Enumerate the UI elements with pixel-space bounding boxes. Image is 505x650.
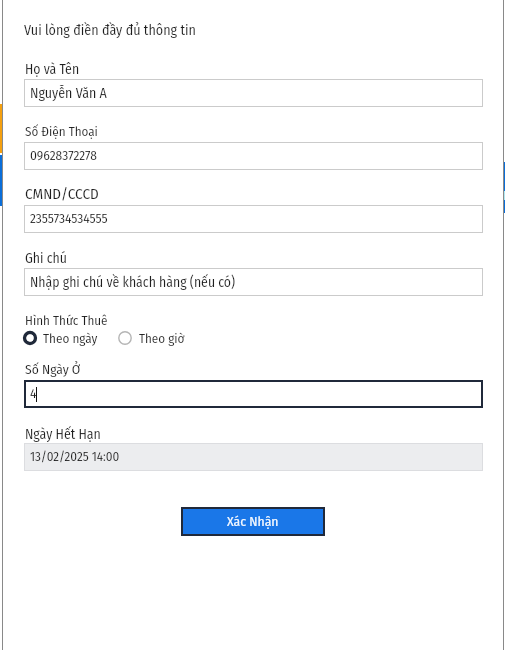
staticText: Ghi chú	[25, 250, 67, 266]
staticText: CMND/CCCD	[25, 185, 99, 203]
button[interactable]	[24, 79, 483, 107]
button[interactable]	[24, 268, 483, 296]
button[interactable]	[23, 330, 101, 346]
staticText: Hình Thức Thuê	[25, 313, 108, 329]
staticText: Nguyễn Văn A	[30, 85, 107, 102]
staticText: Số Điện Thoại	[25, 124, 98, 140]
staticText: Xác Nhận	[227, 513, 279, 529]
button[interactable]	[24, 443, 483, 471]
staticText: Theo ngày	[43, 331, 98, 347]
button[interactable]	[24, 380, 483, 408]
staticText: 4	[30, 386, 37, 402]
staticText: 09628372278	[30, 148, 97, 164]
staticText: Họ và Tên	[25, 61, 80, 77]
staticText: 13/02/2025 14:00	[30, 449, 120, 465]
button[interactable]	[24, 205, 483, 233]
staticText: Nhập ghi chú về khách hàng (nếu có)	[30, 274, 236, 290]
staticText: Vui lòng điền đầy đủ thông tin	[24, 22, 196, 39]
staticText: Số Ngày Ở	[25, 361, 81, 377]
staticText: Theo giờ	[139, 331, 185, 347]
staticText: 2355734534555	[30, 211, 108, 227]
staticText: Ngày Hết Hạn	[25, 426, 101, 443]
button[interactable]	[24, 142, 483, 170]
button[interactable]	[181, 507, 325, 536]
button[interactable]	[118, 331, 188, 346]
